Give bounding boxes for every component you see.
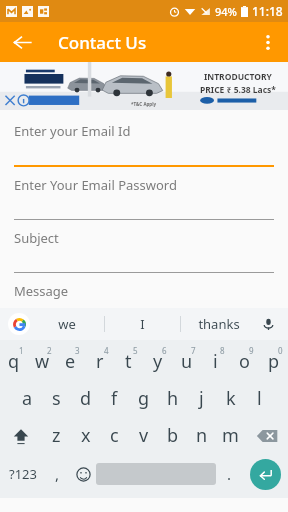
button[interactable]: , <box>45 454 70 494</box>
staticText: *T&C Apply <box>131 101 157 107</box>
button[interactable]: v <box>129 417 158 454</box>
button[interactable]: More options <box>250 24 286 60</box>
button[interactable]: z <box>42 417 71 454</box>
button[interactable]: Emoji <box>70 454 96 494</box>
staticText: e <box>65 349 76 374</box>
staticText: q <box>8 349 20 374</box>
staticText: ?123 <box>9 465 37 483</box>
button[interactable]: f <box>100 380 129 417</box>
staticText: 3 <box>75 345 80 356</box>
staticText: 8 <box>220 345 225 356</box>
button[interactable]: Enter your Email Id <box>0 110 288 167</box>
button[interactable]: n <box>187 417 216 454</box>
staticText: c <box>110 423 119 448</box>
button[interactable]: e <box>56 343 85 380</box>
button[interactable]: Enter <box>250 459 281 490</box>
button[interactable]: m <box>216 417 245 454</box>
staticText: o <box>239 349 250 374</box>
button[interactable]: p <box>259 343 288 380</box>
staticText: Enter Your Email Password <box>14 176 177 194</box>
staticText: j <box>199 386 204 411</box>
staticText: 9 <box>249 345 254 356</box>
staticText: 2 <box>47 345 52 356</box>
staticText: r <box>96 349 104 374</box>
staticText: 94% <box>215 4 237 19</box>
button[interactable]: Back <box>4 24 40 60</box>
button[interactable]: o <box>230 343 259 380</box>
staticText: INTRODUCTORY <box>204 71 272 83</box>
button[interactable]: d <box>71 380 100 417</box>
staticText: i <box>213 349 218 374</box>
button[interactable]: s <box>42 380 71 417</box>
button[interactable]: r <box>85 343 114 380</box>
staticText: 4 <box>104 345 109 356</box>
button[interactable]: I <box>105 308 180 340</box>
staticText: we <box>58 315 76 333</box>
staticText: , <box>55 464 60 484</box>
button[interactable]: j <box>187 380 216 417</box>
staticText: 7 <box>191 345 196 356</box>
staticText: I <box>140 315 145 333</box>
staticText: v <box>139 423 149 448</box>
staticText: 11:18 <box>252 3 283 19</box>
staticText: thanks <box>198 315 240 333</box>
button[interactable]: we <box>30 308 104 340</box>
staticText: g <box>138 386 150 411</box>
button[interactable]: Voice input <box>256 312 280 336</box>
staticText: Contact Us <box>58 31 147 54</box>
button[interactable]: l <box>245 380 274 417</box>
staticText: f <box>111 386 118 411</box>
button[interactable]: Enter Your Email Password <box>0 167 288 220</box>
staticText: l <box>257 386 262 411</box>
button[interactable]: i <box>201 343 230 380</box>
button[interactable]: thanks <box>181 308 256 340</box>
button[interactable]: h <box>158 380 187 417</box>
button[interactable]: . <box>216 454 242 494</box>
staticText: . <box>227 464 232 484</box>
staticText: 5 <box>133 345 138 356</box>
button[interactable]: x <box>71 417 100 454</box>
staticText: w <box>35 349 50 374</box>
button[interactable]: Google <box>8 313 30 335</box>
button[interactable]: c <box>100 417 129 454</box>
staticText: 1 <box>19 345 24 356</box>
staticText: t <box>125 349 132 374</box>
button[interactable]: q <box>0 343 28 380</box>
staticText: Enter your Email Id <box>14 122 131 140</box>
staticText: x <box>81 423 91 448</box>
button[interactable]: Shift <box>0 417 42 454</box>
button[interactable]: k <box>216 380 245 417</box>
button[interactable]: Backspace <box>245 417 288 454</box>
button[interactable]: ?123 <box>0 454 45 494</box>
staticText: h <box>167 386 179 411</box>
button[interactable]: g <box>129 380 158 417</box>
staticText: m <box>222 423 239 448</box>
button[interactable]: y <box>143 343 172 380</box>
staticText: y <box>153 349 163 374</box>
button[interactable]: b <box>158 417 187 454</box>
staticText: n <box>196 423 208 448</box>
button[interactable]: t <box>114 343 143 380</box>
staticText: 6 <box>162 345 167 356</box>
staticText: Subject <box>14 229 59 247</box>
staticText: s <box>52 386 61 411</box>
staticText: d <box>80 386 92 411</box>
staticText: 0 <box>278 345 283 356</box>
button[interactable]: a <box>13 380 42 417</box>
staticText: u <box>181 349 193 374</box>
staticText: z <box>52 423 61 448</box>
staticText: Message <box>14 282 69 300</box>
button[interactable]: Advertisement <box>0 62 288 110</box>
staticText: PRICE ₹ 5.38 Lacs* <box>200 84 276 96</box>
button[interactable]: w <box>28 343 56 380</box>
staticText: k <box>226 386 236 411</box>
button[interactable]: u <box>172 343 201 380</box>
button[interactable]: Subject <box>0 220 288 273</box>
staticText: a <box>22 386 33 411</box>
staticText: p <box>268 349 280 374</box>
staticText: b <box>167 423 179 448</box>
